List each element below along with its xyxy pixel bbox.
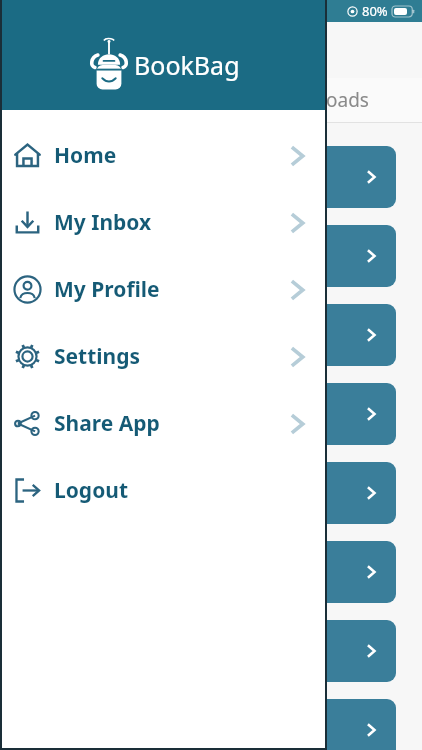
- staticText: My Profile: [54, 275, 160, 304]
- button[interactable]: Settings: [0, 323, 327, 390]
- button[interactable]: [283, 146, 396, 208]
- button[interactable]: [283, 699, 396, 750]
- button[interactable]: [283, 462, 396, 524]
- button[interactable]: My Profile: [0, 256, 327, 323]
- button[interactable]: [283, 304, 396, 366]
- button[interactable]: [283, 620, 396, 682]
- button[interactable]: Share App: [0, 390, 327, 457]
- button[interactable]: Home: [0, 122, 327, 189]
- staticText: Home: [54, 141, 117, 170]
- staticText: Share App: [54, 409, 160, 438]
- button[interactable]: My Inbox: [0, 189, 327, 256]
- staticText: 80%: [362, 2, 388, 20]
- staticText: BookBag: [134, 48, 240, 82]
- staticText: Logout: [54, 476, 129, 505]
- staticText: My Inbox: [54, 208, 152, 237]
- button[interactable]: [283, 225, 396, 287]
- staticText: oads: [326, 87, 369, 113]
- staticText: Settings: [54, 342, 141, 371]
- button[interactable]: [283, 541, 396, 603]
- button[interactable]: Logout: [0, 457, 327, 524]
- button[interactable]: [283, 383, 396, 445]
